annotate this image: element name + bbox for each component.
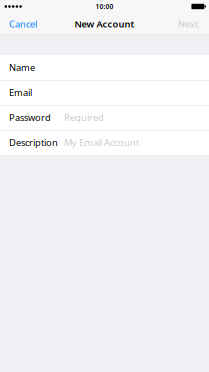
staticText: Required	[64, 111, 104, 124]
staticText: Email	[9, 86, 32, 99]
button[interactable]: Description	[0, 130, 209, 155]
staticText: Description	[9, 136, 58, 149]
staticText: Cancel	[9, 18, 37, 30]
staticText: My Email Account	[64, 136, 139, 149]
button[interactable]: Password	[0, 105, 209, 130]
staticText: New Account	[74, 18, 134, 30]
staticText: 10:00	[95, 2, 113, 11]
staticText: Password	[9, 111, 51, 124]
button[interactable]: Email	[0, 80, 209, 105]
button[interactable]: Cancel	[0, 13, 62, 35]
staticText: Name	[9, 61, 35, 74]
button[interactable]: Name	[0, 55, 209, 80]
button[interactable]: Next	[147, 13, 209, 35]
staticText: Next	[178, 18, 198, 30]
